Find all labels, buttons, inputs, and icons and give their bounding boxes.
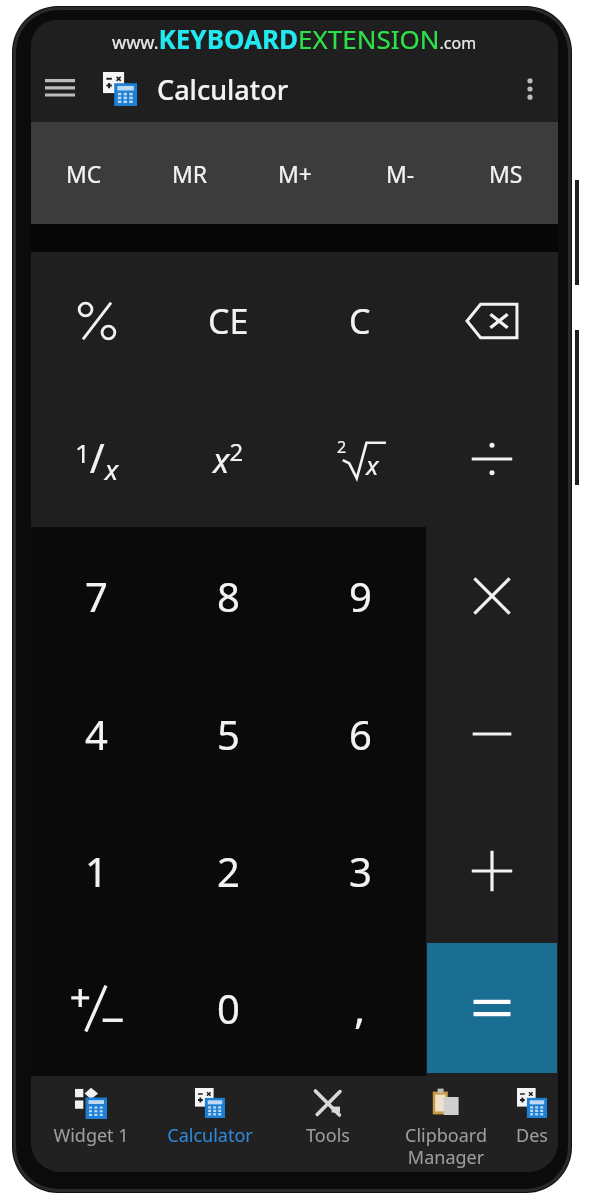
button[interactable]: Widget 1 bbox=[31, 1076, 150, 1172]
staticText: 9 bbox=[349, 569, 372, 623]
staticText: 1/x bbox=[75, 430, 119, 488]
staticText: Widget 1 bbox=[53, 1123, 129, 1148]
button[interactable]: 7 bbox=[31, 527, 162, 665]
staticText: 7 bbox=[85, 569, 108, 623]
button[interactable]: M+ bbox=[243, 122, 348, 224]
button[interactable]: Menu bbox=[31, 60, 89, 118]
staticText: Clipboard Manager bbox=[405, 1123, 487, 1170]
staticText: M- bbox=[386, 158, 415, 189]
button[interactable]: C bbox=[294, 252, 426, 390]
button[interactable]: Clipboard Manager bbox=[387, 1076, 505, 1172]
staticText: Calculator bbox=[167, 1123, 253, 1148]
staticText: MC bbox=[66, 158, 102, 189]
staticText: www.KEYBOARDEXTENSION.com bbox=[112, 21, 477, 56]
button[interactable]: Des bbox=[505, 1076, 558, 1172]
button[interactable]: Calculator bbox=[150, 1076, 269, 1172]
staticText: x bbox=[366, 447, 379, 482]
button[interactable] bbox=[426, 252, 558, 390]
button[interactable]: CE bbox=[162, 252, 294, 390]
staticText: 6 bbox=[349, 707, 372, 761]
button[interactable]: x2 bbox=[162, 390, 294, 527]
button[interactable]: 5 bbox=[162, 665, 294, 802]
staticText: C bbox=[349, 298, 371, 344]
staticText: , bbox=[354, 979, 366, 1036]
staticText: 8 bbox=[217, 569, 240, 623]
button[interactable] bbox=[426, 527, 558, 665]
button[interactable]: MS bbox=[453, 122, 558, 224]
staticText: 3 bbox=[349, 844, 372, 898]
staticText: Tools bbox=[306, 1123, 350, 1148]
button[interactable]: 6 bbox=[294, 665, 426, 802]
button[interactable]: Equals bbox=[427, 943, 557, 1073]
button[interactable]: 3 bbox=[294, 802, 426, 939]
staticText: Des bbox=[516, 1123, 548, 1148]
button[interactable]: , bbox=[294, 939, 426, 1076]
staticText: 5 bbox=[217, 707, 240, 761]
staticText: 0 bbox=[217, 981, 240, 1035]
staticText: Calculator bbox=[157, 71, 289, 108]
button[interactable]: 8 bbox=[162, 527, 294, 665]
button[interactable]: MR bbox=[137, 122, 243, 224]
button[interactable] bbox=[426, 665, 558, 802]
button[interactable]: 1 bbox=[31, 802, 162, 939]
button[interactable]: MC bbox=[31, 122, 137, 224]
button[interactable]: 9 bbox=[294, 527, 426, 665]
staticText: x2 bbox=[213, 435, 244, 483]
button[interactable]: 2 bbox=[294, 390, 426, 527]
button[interactable] bbox=[426, 390, 558, 527]
button[interactable] bbox=[426, 802, 558, 939]
button[interactable] bbox=[31, 939, 162, 1076]
staticText: 2 bbox=[217, 844, 240, 898]
button[interactable]: 1/x bbox=[31, 390, 162, 527]
button[interactable]: Tools bbox=[269, 1076, 387, 1172]
button[interactable]: M- bbox=[348, 122, 453, 224]
button[interactable]: 4 bbox=[31, 665, 162, 802]
staticText: 4 bbox=[85, 707, 108, 761]
staticText: MR bbox=[172, 158, 208, 189]
button[interactable]: 2 bbox=[162, 802, 294, 939]
button[interactable]: 0 bbox=[162, 939, 294, 1076]
staticText: CE bbox=[208, 298, 249, 344]
staticText: 2 bbox=[337, 436, 347, 458]
staticText: MS bbox=[489, 158, 523, 189]
button[interactable]: More options bbox=[502, 61, 558, 117]
button[interactable] bbox=[31, 252, 162, 390]
staticText: 1 bbox=[85, 844, 108, 898]
staticText: M+ bbox=[278, 158, 313, 189]
